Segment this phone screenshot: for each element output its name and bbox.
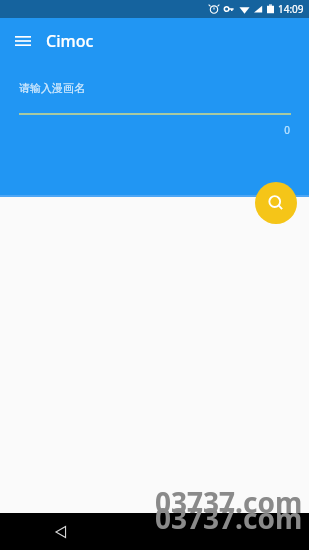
staticText: 请输入漫画名: [19, 81, 85, 95]
button[interactable]: Search: [255, 182, 297, 224]
staticText: Cimoc: [46, 30, 94, 52]
staticText: 0: [0, 123, 290, 137]
button[interactable]: Back: [48, 519, 74, 545]
button[interactable]: 请输入漫画名: [19, 63, 291, 123]
staticText: 03737.com: [155, 483, 303, 521]
staticText: 03737.com: [155, 499, 303, 536]
button[interactable]: Open navigation menu: [8, 26, 38, 56]
staticText: 14:09: [278, 2, 304, 16]
